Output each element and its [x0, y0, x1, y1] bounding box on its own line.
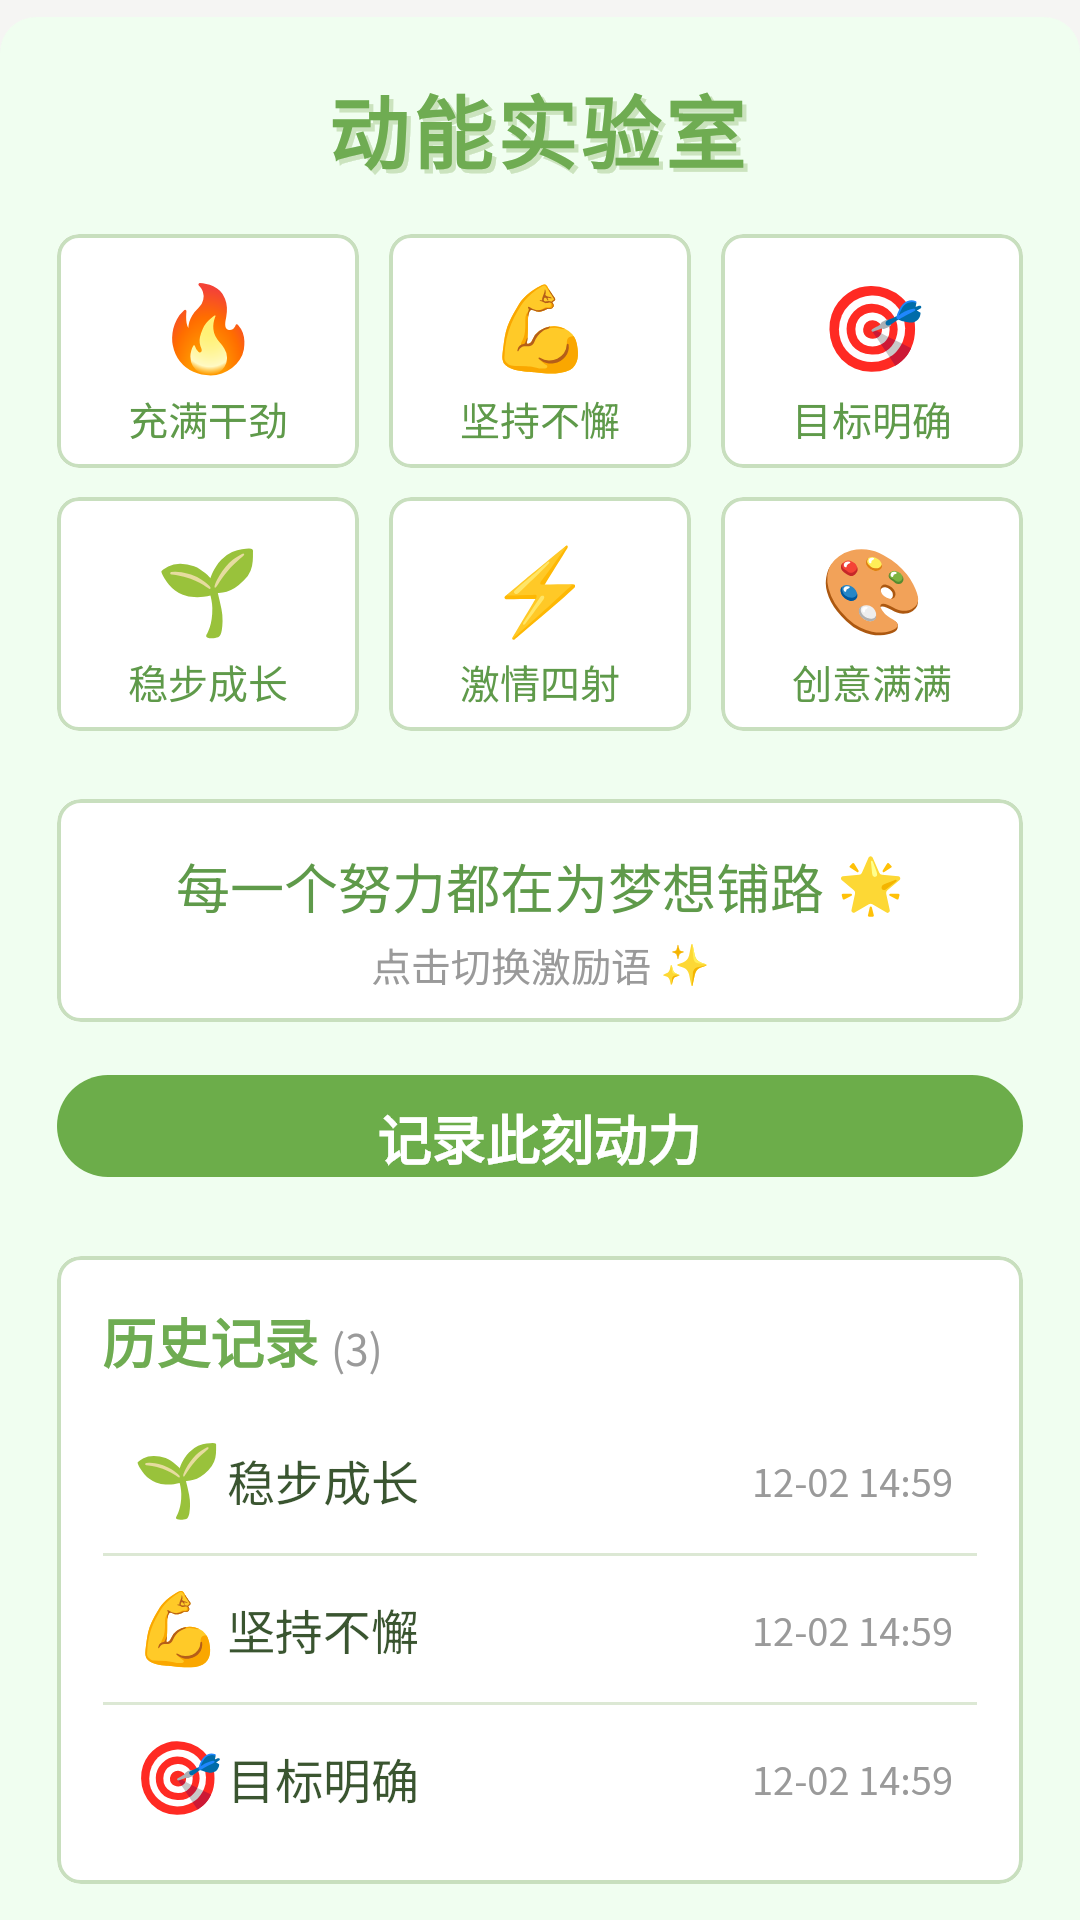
staticText: 🎨: [820, 543, 925, 641]
staticText: 🌱: [156, 543, 261, 641]
staticText: 稳步成长: [227, 1445, 420, 1515]
staticText: 目标明确: [792, 390, 952, 448]
staticText: 🎯: [820, 280, 925, 378]
button[interactable]: ⚡: [389, 497, 691, 731]
button[interactable]: 💪: [389, 234, 691, 468]
staticText: 每一个努力都在为梦想铺路: [176, 846, 837, 924]
staticText: (3): [331, 1317, 383, 1378]
staticText: 记录此刻动力: [378, 1097, 702, 1175]
button[interactable]: 🌱: [57, 497, 359, 731]
staticText: ✨: [660, 942, 710, 989]
button[interactable]: 每一个努力都在为梦想铺路: [57, 799, 1023, 1022]
staticText: 12-02 14:59: [752, 1453, 953, 1508]
button[interactable]: 🎯: [57, 1705, 1023, 1851]
staticText: ⚡: [488, 543, 593, 641]
staticText: 12-02 14:59: [752, 1602, 953, 1657]
staticText: 充满干劲: [128, 390, 288, 448]
staticText: 动能实验室: [4, 73, 1080, 189]
staticText: 12-02 14:59: [752, 1751, 953, 1806]
staticText: 💪: [133, 1587, 223, 1671]
staticText: 🌱: [133, 1438, 223, 1522]
staticText: 激情四射: [460, 653, 620, 711]
staticText: 🌟: [837, 854, 905, 917]
button[interactable]: 🎯: [721, 234, 1023, 468]
staticText: 创意满满: [792, 653, 952, 711]
staticText: 历史记录: [103, 1300, 319, 1378]
staticText: 坚持不懈: [460, 390, 620, 448]
staticText: 点击切换激励语: [371, 936, 660, 994]
button[interactable]: 🌱: [57, 1407, 1023, 1553]
button[interactable]: 🎨: [721, 497, 1023, 731]
staticText: 目标明确: [227, 1743, 420, 1813]
button[interactable]: 记录此刻动力: [57, 1075, 1023, 1177]
staticText: 💪: [488, 280, 593, 378]
staticText: 坚持不懈: [227, 1594, 420, 1664]
staticText: 动能实验室: [0, 69, 1080, 185]
staticText: 稳步成长: [128, 653, 288, 711]
button[interactable]: 💪: [57, 1556, 1023, 1702]
staticText: 🔥: [156, 280, 261, 378]
staticText: 🎯: [133, 1736, 223, 1820]
button[interactable]: 🔥: [57, 234, 359, 468]
